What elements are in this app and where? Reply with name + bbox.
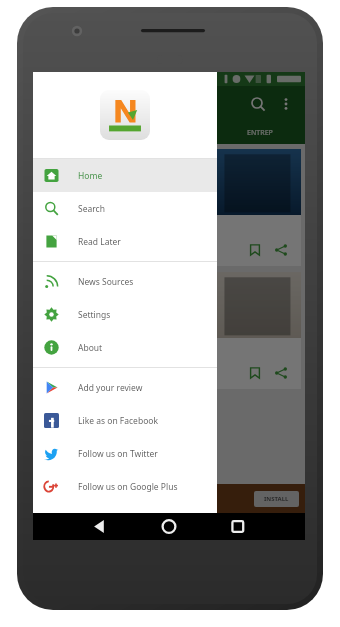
staticText: YOURSTARTUP bbox=[144, 128, 193, 138]
button[interactable]: More options bbox=[273, 91, 299, 117]
staticText: Search bbox=[78, 203, 105, 215]
button[interactable]: Like as on Facebook bbox=[33, 404, 217, 437]
button[interactable]: Search bbox=[33, 192, 217, 225]
staticText: Modern Interior Design bbox=[45, 345, 167, 360]
button[interactable]: LATEST bbox=[33, 122, 123, 144]
button[interactable]: Bookmark bbox=[245, 363, 265, 383]
button[interactable]: Search bbox=[243, 89, 273, 119]
staticText: News Sources bbox=[78, 276, 134, 288]
staticText: Like as on Facebook bbox=[78, 415, 158, 427]
button[interactable]: Settings bbox=[33, 298, 217, 331]
button[interactable]: Home bbox=[33, 159, 217, 192]
staticText: Settings bbox=[78, 309, 111, 321]
staticText: Follow us on Twitter bbox=[78, 448, 158, 460]
button[interactable]: ENTREP bbox=[214, 122, 305, 144]
staticText: Read Later bbox=[78, 236, 121, 248]
button[interactable]: About bbox=[33, 331, 217, 364]
staticText: Follow us on Google Plus bbox=[78, 481, 178, 493]
button[interactable]: Follow us on Google Plus bbox=[33, 470, 217, 503]
button[interactable]: Follow us on Twitter bbox=[33, 437, 217, 470]
button[interactable]: INSTALL bbox=[264, 495, 289, 503]
staticText: INSTALL bbox=[264, 495, 289, 503]
staticText: Home bbox=[78, 170, 103, 182]
button[interactable]: News Sources bbox=[33, 265, 217, 298]
button[interactable]: Read Later bbox=[33, 225, 217, 258]
button[interactable]: Add your review bbox=[33, 371, 217, 404]
button[interactable]: Bookmark bbox=[245, 240, 265, 260]
staticText: ENTREP bbox=[247, 128, 273, 138]
staticText: About bbox=[78, 342, 103, 354]
button[interactable]: Home Designer Work bbox=[33, 484, 305, 513]
button[interactable]: Share bbox=[271, 363, 291, 383]
button[interactable]: Modern Interior Design bbox=[37, 272, 301, 389]
button[interactable]: YOURSTARTUP bbox=[123, 122, 214, 144]
button[interactable]: Best HSC Inks bbox=[37, 149, 301, 266]
button[interactable]: Share bbox=[271, 240, 291, 260]
staticText: Best HSC Inks bbox=[45, 222, 117, 237]
staticText: Add your review bbox=[78, 382, 143, 394]
